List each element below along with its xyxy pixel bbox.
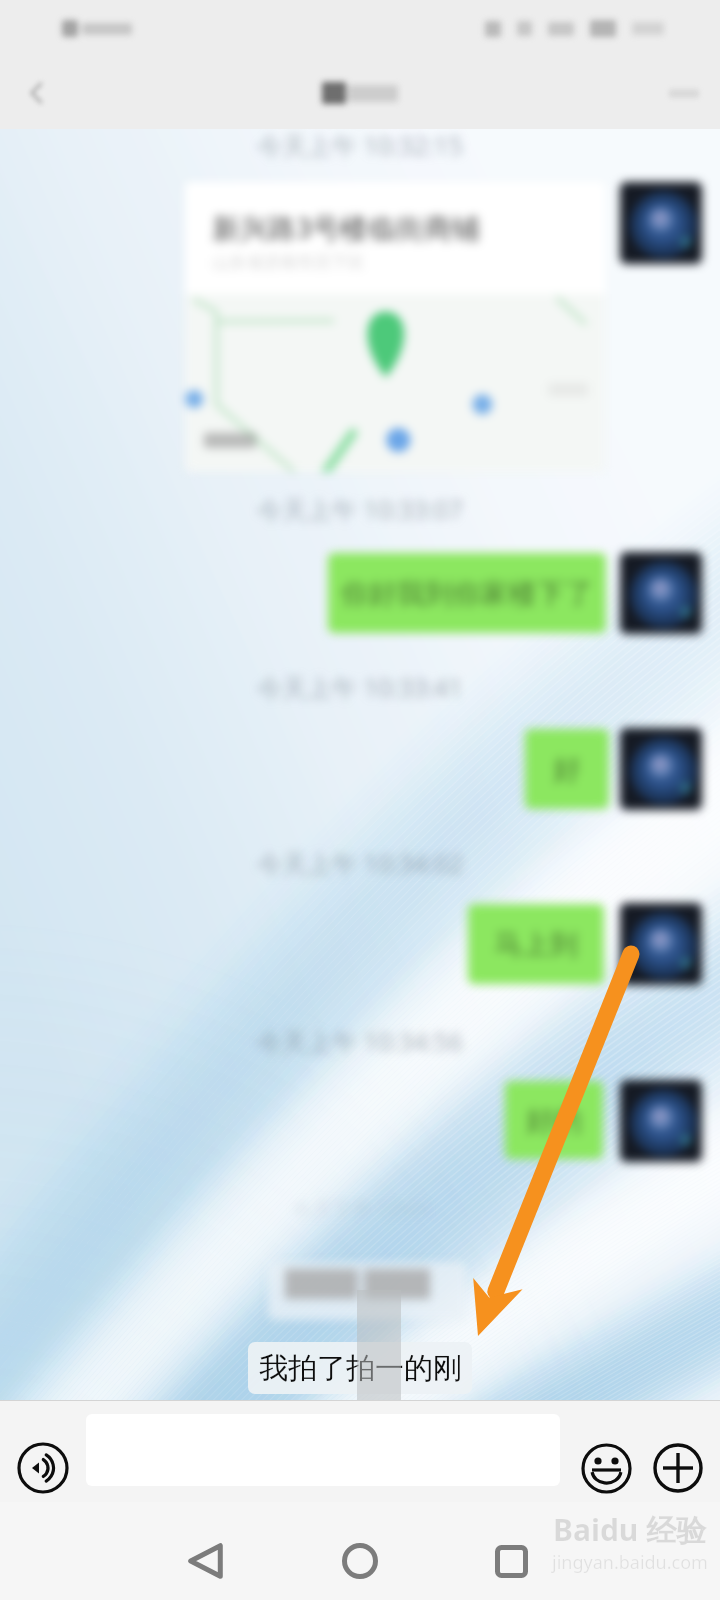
button[interactable]: More options: [648, 57, 720, 129]
staticText: 今天上午 10:33:07: [257, 492, 463, 526]
button[interactable]: 新兴路3号楼临街商铺: [185, 182, 605, 472]
button[interactable]: 你好我到你家楼下了: [328, 553, 606, 633]
staticText: 今天下午 12:04: [292, 1195, 429, 1222]
staticText: 你好我到你家楼下了: [341, 576, 593, 611]
button[interactable]: Contact avatar: [620, 903, 702, 985]
button[interactable]: Recent apps: [471, 1521, 551, 1600]
staticText: 今天上午 10:34:02: [257, 846, 463, 880]
button[interactable]: Contact avatar: [620, 182, 702, 264]
button[interactable]: Emoji: [581, 1443, 632, 1494]
button[interactable]: Contact avatar: [620, 1080, 702, 1162]
staticText: 今天上午 10:32:15: [257, 128, 463, 162]
button[interactable]: Home: [320, 1521, 400, 1600]
button[interactable]: Contact avatar: [620, 552, 702, 634]
button[interactable]: Voice message: [17, 1442, 69, 1494]
button[interactable]: 好的: [505, 1081, 603, 1159]
button[interactable]: 好: [525, 729, 609, 809]
button[interactable]: 马上到: [468, 904, 604, 984]
staticText: Baidu 经验: [553, 1509, 707, 1550]
staticText: 今天上午 10:33:41: [257, 670, 463, 704]
button[interactable]: Back: [0, 57, 72, 129]
button[interactable]: Back: [166, 1521, 246, 1600]
staticText: jingyan.baidu.com: [552, 1550, 708, 1575]
button[interactable]: More functions: [653, 1443, 703, 1493]
button[interactable]: Contact avatar: [620, 728, 702, 810]
staticText: 今天上午 10:34:56: [257, 1024, 463, 1058]
button[interactable]: 我拍了拍一的刚: [248, 1342, 472, 1394]
staticText: 我拍了拍一的刚: [259, 1350, 462, 1387]
staticText: 好的: [526, 1103, 582, 1138]
staticText: 新兴路3号楼临街商铺: [212, 208, 481, 246]
staticText: 好: [553, 752, 581, 787]
staticText: 马上到: [494, 927, 578, 962]
